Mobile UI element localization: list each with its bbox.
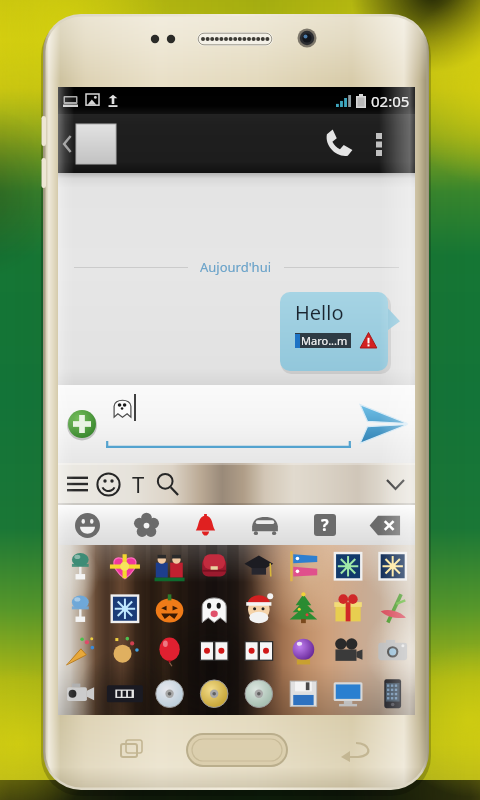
button[interactable]: Settings <box>117 505 176 545</box>
button[interactable]: Help <box>295 505 355 545</box>
button[interactable]: Add attachment <box>62 404 102 444</box>
button[interactable]: Notifications <box>176 505 235 545</box>
button[interactable]: Emoji <box>92 464 124 504</box>
button[interactable]: Contact photo <box>76 124 116 164</box>
staticText: T <box>132 469 145 499</box>
button[interactable]: Smileys <box>58 505 117 545</box>
staticText: Aujourd'hui <box>200 258 272 276</box>
button[interactable]: Emoji keyboard <box>58 545 415 715</box>
button[interactable]: Back <box>58 114 76 173</box>
staticText: ? <box>321 514 329 536</box>
button[interactable]: Delete <box>355 505 415 545</box>
button[interactable]: Search <box>152 464 182 504</box>
button[interactable]: Send <box>353 394 413 454</box>
staticText: Maro...m <box>301 333 348 348</box>
staticText: Hello <box>295 299 344 326</box>
staticText: 02:05 <box>371 91 410 111</box>
button[interactable]: Travel <box>235 505 295 545</box>
button[interactable]: Collapse keyboard <box>375 464 415 504</box>
button[interactable]: Menu <box>62 464 92 504</box>
button[interactable]: Call <box>313 114 363 173</box>
button[interactable]: More options <box>363 114 395 173</box>
button[interactable]: Text <box>124 464 152 504</box>
